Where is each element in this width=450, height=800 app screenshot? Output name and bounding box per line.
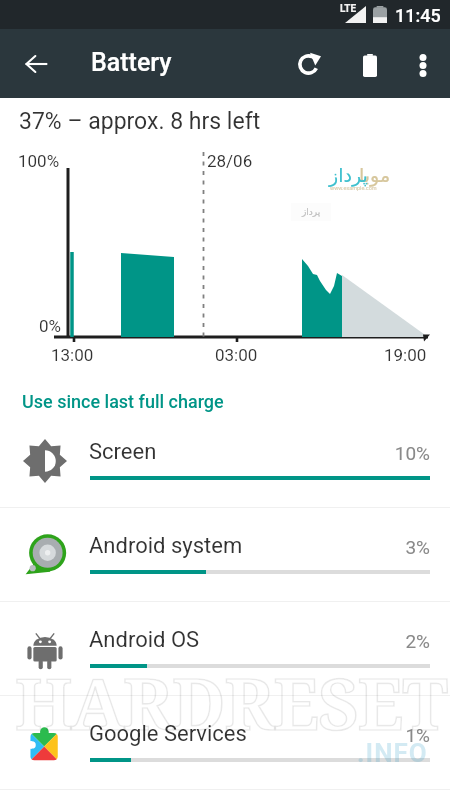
staticText: پرداز — [329, 164, 368, 186]
staticText: 3% — [374, 536, 430, 558]
staticText: www.example.com — [330, 185, 377, 191]
staticText: 10% — [374, 442, 430, 464]
staticText: Android OS — [89, 627, 200, 653]
staticText: LTE — [340, 3, 357, 15]
button[interactable]: Android system — [0, 508, 450, 601]
button[interactable]: Google Services — [0, 696, 450, 789]
button[interactable]: Battery status — [345, 29, 393, 98]
button[interactable]: Navigate up — [0, 29, 72, 98]
button[interactable]: Android OS — [0, 602, 450, 695]
staticText: 19:00 — [384, 345, 427, 365]
staticText: Android system — [89, 533, 243, 559]
button[interactable]: More options — [399, 29, 445, 98]
staticText: موبا — [359, 164, 391, 186]
staticText: 13:00 — [51, 345, 94, 365]
button[interactable]: Screen — [0, 414, 450, 507]
staticText: Screen — [89, 439, 157, 465]
staticText: Google Services — [89, 721, 247, 747]
staticText: 1% — [374, 724, 430, 746]
staticText: 11:45 — [395, 5, 441, 26]
staticText: 03:00 — [215, 345, 258, 365]
staticText: Use since last full charge — [22, 391, 224, 412]
staticText: 37% – approx. 8 hrs left — [19, 108, 261, 135]
staticText: Battery — [91, 48, 172, 77]
staticText: 0% — [39, 316, 62, 336]
button[interactable]: Refresh — [284, 29, 332, 98]
staticText: 2% — [374, 630, 430, 652]
staticText: HARDRESET — [15, 655, 448, 750]
staticText: 100% — [18, 151, 60, 171]
staticText: پرداز — [302, 207, 321, 217]
staticText: 28/06 — [207, 151, 253, 171]
staticText: .INFO — [357, 738, 428, 768]
